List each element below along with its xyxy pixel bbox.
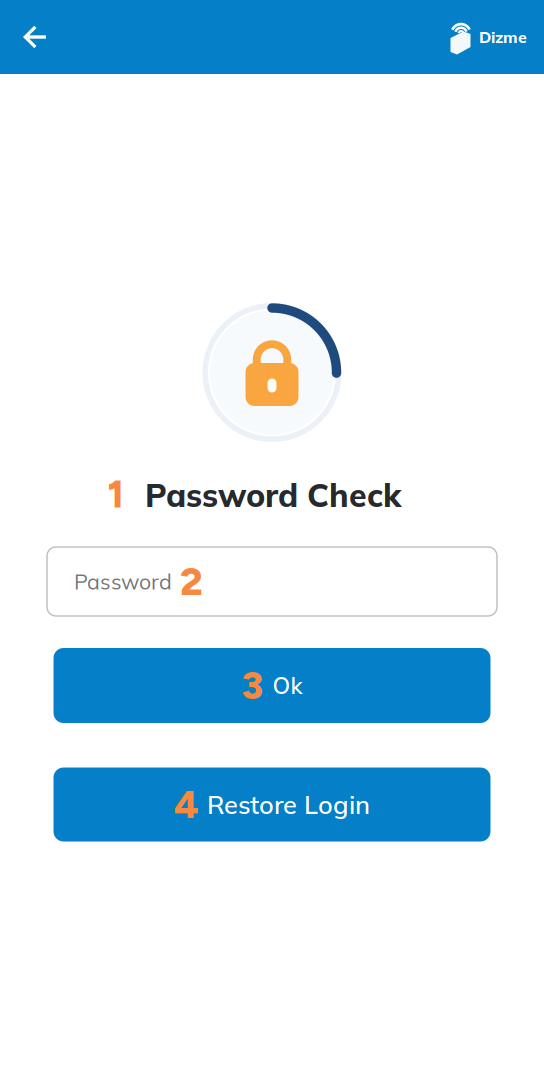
- staticText: Ok: [272, 671, 302, 700]
- staticText: 4: [174, 781, 199, 828]
- staticText: Dizme: [479, 27, 527, 47]
- staticText: Password: [74, 568, 172, 595]
- staticText: 1: [107, 471, 123, 517]
- staticText: 2: [180, 558, 203, 605]
- staticText: Restore Login: [207, 789, 370, 820]
- button[interactable]: 4: [53, 767, 490, 841]
- button[interactable]: 3: [53, 648, 490, 723]
- button[interactable]: Dizme: [450, 0, 544, 74]
- staticText: Password Check: [145, 475, 401, 515]
- button[interactable]: Back: [0, 0, 62, 74]
- staticText: 3: [241, 662, 263, 709]
